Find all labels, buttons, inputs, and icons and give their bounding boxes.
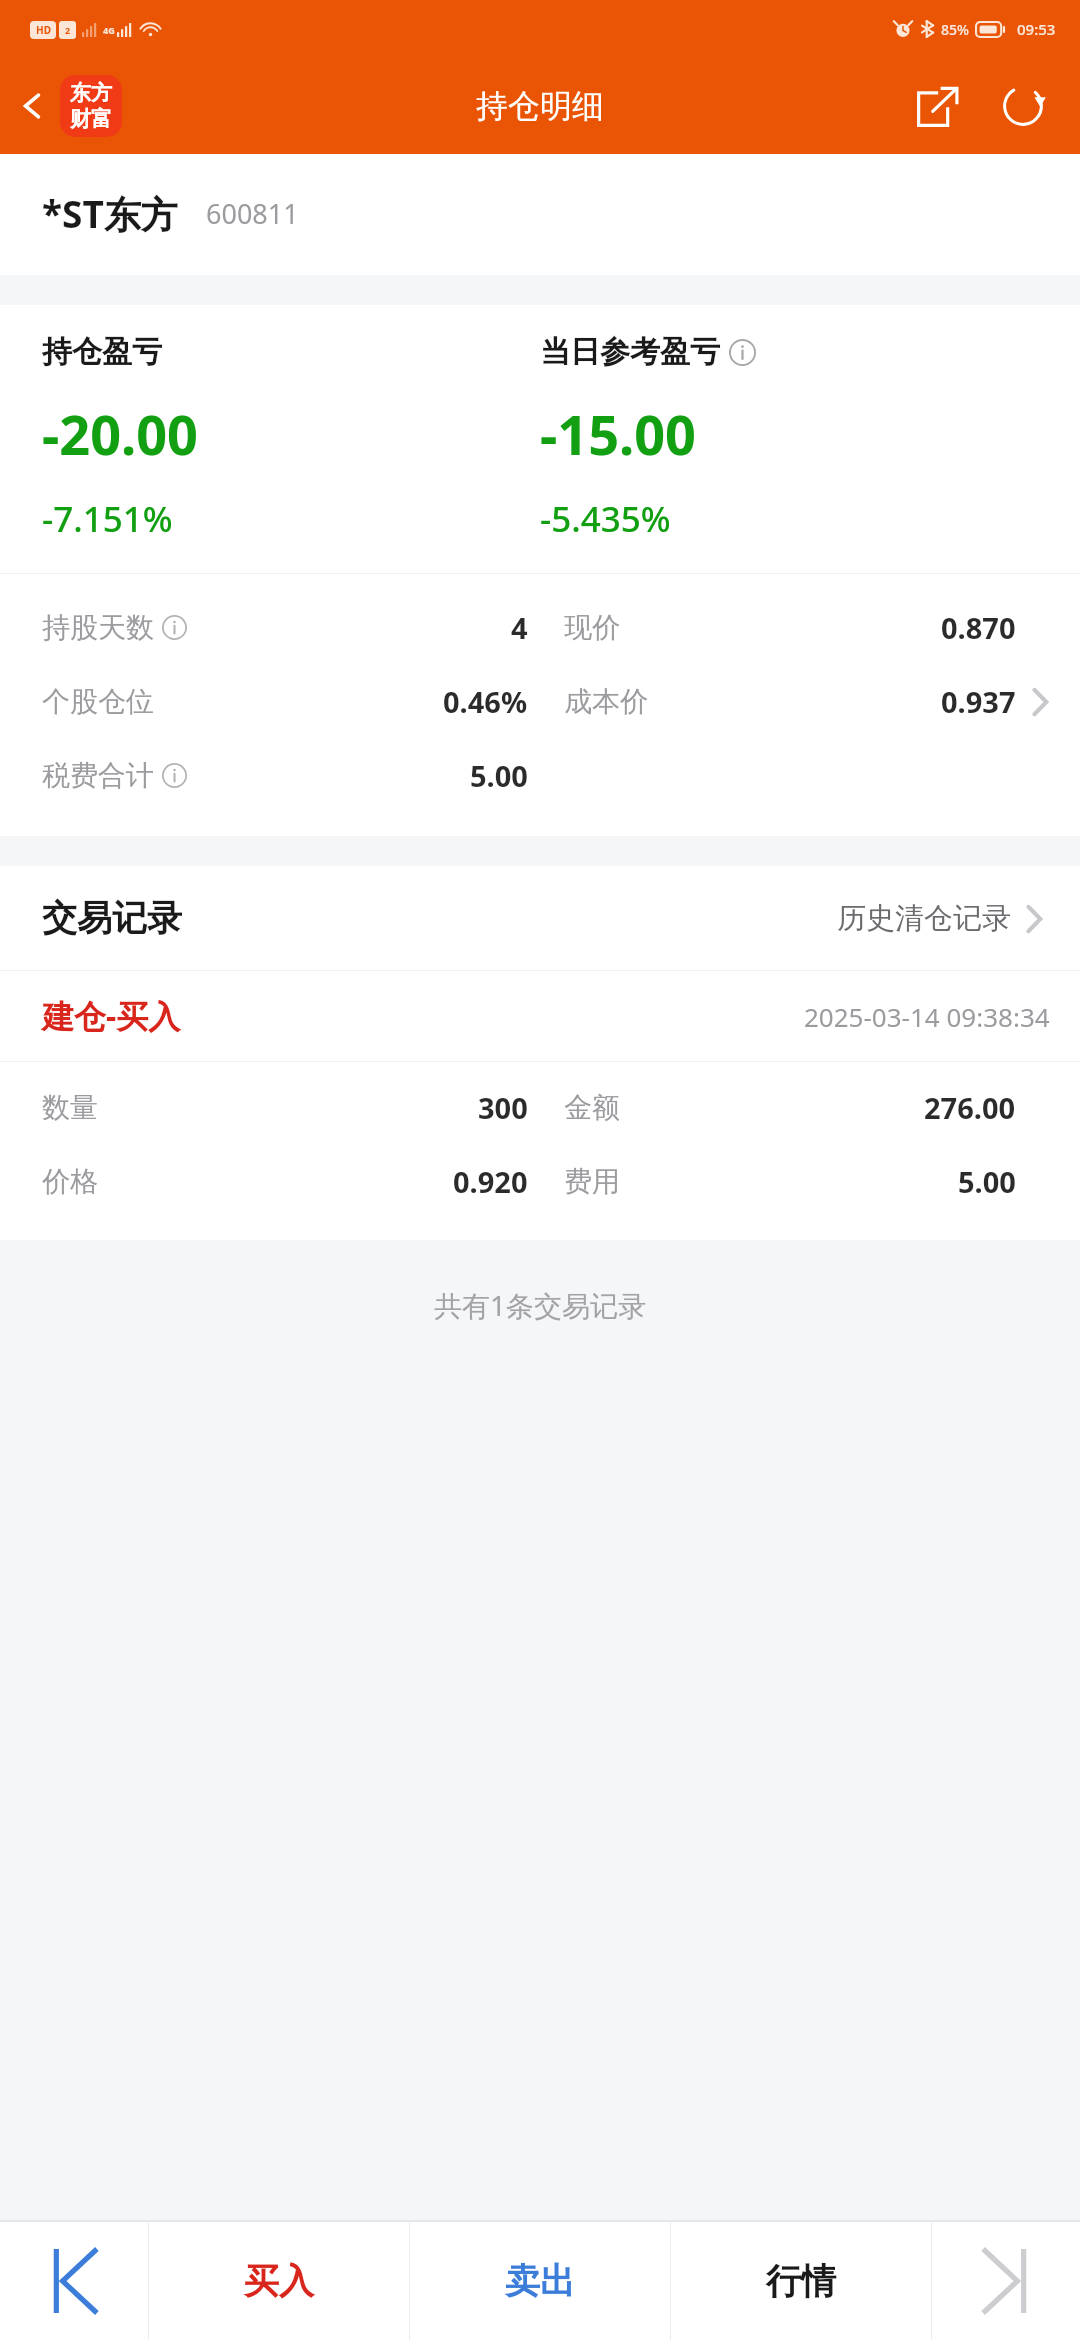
staticText: 现价: [564, 610, 620, 645]
staticText: 交易记录: [42, 896, 182, 940]
staticText: 300: [478, 1088, 528, 1127]
staticText: -5.435%: [540, 495, 671, 543]
button[interactable]: 历史清仓记录: [831, 894, 1050, 943]
staticText: 税费合计: [42, 758, 154, 793]
button[interactable]: 行情: [671, 2222, 931, 2340]
staticText: 85%: [941, 20, 969, 39]
staticText: 600811: [206, 195, 299, 232]
staticText: 持股天数: [42, 610, 154, 645]
button[interactable]: Back: [0, 67, 134, 145]
staticText: 5.00: [958, 1162, 1016, 1201]
staticText: 历史清仓记录: [837, 900, 1011, 937]
staticText: 0.920: [453, 1162, 528, 1201]
staticText: 09:53: [1017, 19, 1056, 39]
staticText: 金额: [564, 1090, 620, 1125]
staticText: -7.151%: [42, 495, 173, 543]
button[interactable]: Share: [902, 70, 974, 142]
staticText: 个股仓位: [42, 684, 154, 719]
staticText: 5.00: [470, 756, 528, 795]
staticText: 持仓明细: [476, 86, 604, 126]
staticText: 0.937: [941, 682, 1016, 721]
staticText: 东方: [70, 80, 112, 106]
button[interactable]: 买入: [149, 2222, 409, 2340]
staticText: HD: [36, 23, 51, 37]
staticText: 数量: [42, 1090, 98, 1125]
staticText: 0.870: [941, 608, 1016, 647]
staticText: 0.46%: [443, 682, 528, 721]
button[interactable]: 卖出: [410, 2222, 670, 2340]
button[interactable]: Refresh: [988, 71, 1058, 141]
staticText: 建仓-买入: [42, 994, 181, 1038]
button[interactable]: Next stock: [932, 2222, 1080, 2340]
staticText: 行情: [766, 2259, 836, 2303]
staticText: 当日参考盈亏: [540, 333, 720, 371]
staticText: 276.00: [924, 1088, 1016, 1127]
staticText: 财富: [70, 106, 112, 132]
staticText: 买入: [244, 2259, 314, 2303]
staticText: 费用: [564, 1164, 620, 1199]
staticText: 2025-03-14 09:38:34: [804, 999, 1050, 1034]
staticText: *ST东方: [42, 188, 178, 239]
staticText: 4: [511, 608, 528, 647]
staticText: 4G: [103, 24, 115, 36]
button[interactable]: *ST东方: [0, 154, 1080, 275]
button[interactable]: Previous stock: [0, 2222, 148, 2340]
staticText: 成本价: [564, 684, 648, 719]
staticText: -15.00: [540, 397, 697, 471]
staticText: 价格: [42, 1164, 98, 1199]
staticText: 卖出: [505, 2259, 575, 2303]
staticText: -20.00: [42, 397, 199, 471]
staticText: 持仓盈亏: [42, 333, 162, 371]
staticText: 共有1条交易记录: [434, 1286, 647, 1324]
staticText: 2: [65, 24, 71, 36]
